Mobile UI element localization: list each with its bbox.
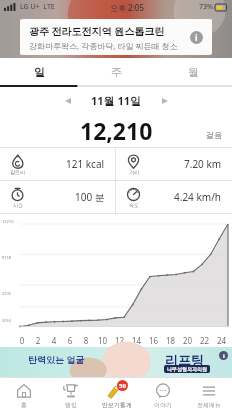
staticText: 오후 2:05 [110, 2, 144, 13]
staticText: 전체메뉴 [197, 401, 221, 409]
button[interactable]: 주 [78, 58, 155, 85]
staticText: 강화마루왁스, 각종바닥, 타일 찌든때 청소및… [29, 40, 186, 51]
staticText: LG U+ LTE [20, 2, 55, 12]
staticText: 광주 전라도전지역 원스톱크린 [29, 24, 165, 38]
button[interactable]: 속도 [116, 181, 232, 213]
button[interactable]: 50 [94, 378, 140, 414]
staticText: 121 kcal [66, 157, 105, 171]
staticText: 4.24 km/h [174, 190, 222, 204]
staticText: 6 [62, 335, 78, 346]
staticText: 8 [78, 335, 94, 346]
button[interactable]: 랭킹 [47, 378, 94, 414]
button[interactable]: 일 [0, 58, 78, 85]
button[interactable]: 광고 정보 [190, 31, 203, 44]
staticText: 탄력있는 얼굴 [28, 353, 85, 365]
button[interactable]: 탄력있는 얼굴 [0, 347, 232, 377]
button[interactable]: 시간 [0, 181, 115, 213]
staticText: 7.20 km [184, 157, 222, 171]
button[interactable]: 홈 [0, 378, 47, 414]
staticText: 12210 [2, 219, 14, 224]
staticText: 2053 [2, 318, 12, 323]
staticText: 24 [213, 335, 230, 346]
staticText: 거리 [129, 169, 139, 175]
staticText: 10 [94, 335, 111, 346]
staticText: 만보기통계 [102, 401, 132, 409]
staticText: 랭킹 [65, 401, 77, 409]
staticText: 2 [30, 335, 46, 346]
button[interactable]: 칼로리 [0, 148, 115, 180]
staticText: 시간 [13, 202, 23, 208]
staticText: 월 [188, 65, 199, 79]
staticText: 100 분 [75, 190, 105, 204]
staticText: 22 [196, 335, 213, 346]
staticText: 일 [34, 65, 45, 79]
staticText: 0 [14, 335, 30, 346]
button[interactable]: 광고 정보 [219, 351, 228, 360]
staticText: i [195, 32, 198, 43]
staticText: 주 [111, 65, 122, 79]
staticText: 11월 11일 [91, 93, 142, 108]
staticText: 14 [128, 335, 145, 346]
staticText: 8158 [2, 255, 12, 260]
button[interactable]: 광주 전라도전지역 원스톱크린 [20, 19, 212, 55]
staticText: 73% [199, 2, 213, 12]
staticText: 속도 [129, 202, 139, 208]
staticText: 리프팅 [165, 352, 204, 368]
staticText: 50 [119, 382, 126, 390]
staticText: 4105 [2, 291, 12, 296]
button[interactable]: 거리 [116, 148, 232, 180]
button[interactable]: 전체메뉴 [186, 378, 232, 414]
button[interactable]: 이야기 [140, 378, 186, 414]
staticText: 16 [145, 335, 162, 346]
staticText: 4 [46, 335, 62, 346]
staticText: 칼로리 [10, 169, 25, 175]
staticText: i [223, 352, 225, 360]
button[interactable]: 월 [155, 58, 232, 85]
staticText: 20 [179, 335, 196, 346]
button[interactable]: 이전 날짜 [58, 91, 78, 111]
staticText: 홈 [21, 401, 27, 409]
staticText: 이야기 [154, 401, 172, 409]
staticText: 18 [162, 335, 179, 346]
staticText: 걸음 [206, 130, 222, 140]
staticText: 12 [111, 335, 128, 346]
staticText: 나무성형외과의원 [167, 366, 207, 372]
button[interactable]: 다음 날짜 [155, 91, 175, 111]
staticText: 12,210 [80, 115, 153, 146]
